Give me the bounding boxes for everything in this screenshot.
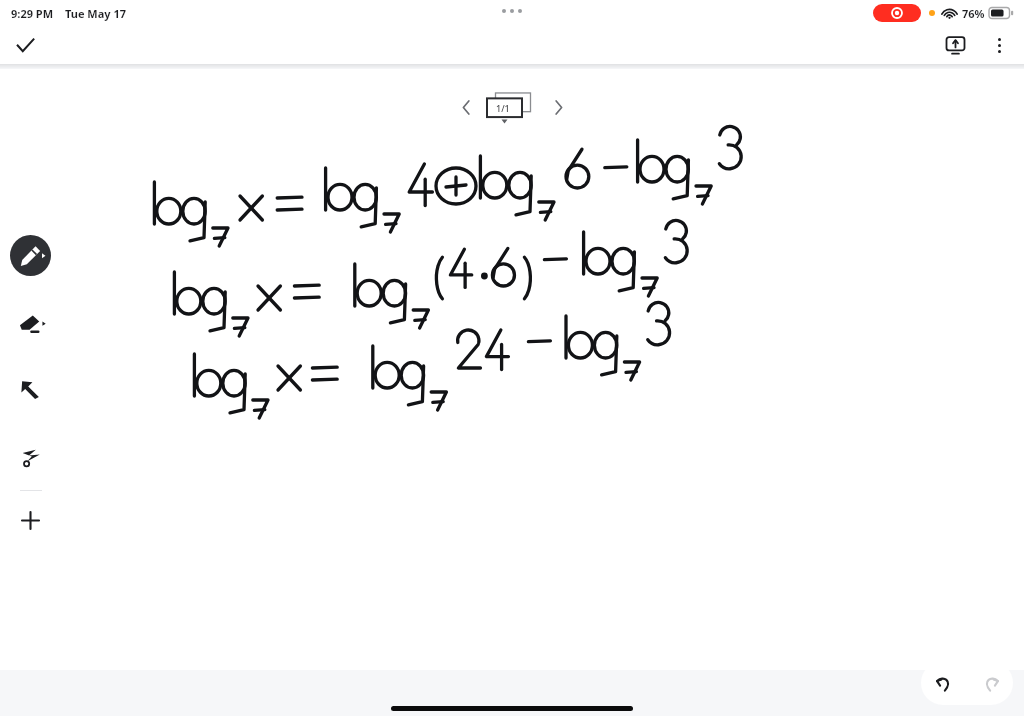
button[interactable]: More options	[982, 28, 1016, 62]
button[interactable]: Redo	[973, 665, 1009, 701]
staticText: 1/1	[496, 102, 510, 114]
button[interactable]: Screen recording	[873, 4, 921, 22]
staticText: 9:29 PM	[11, 6, 54, 21]
button[interactable]: Add tool	[10, 500, 51, 541]
button[interactable]: Lasso tool	[10, 436, 51, 477]
button[interactable]: Done	[8, 28, 42, 62]
button[interactable]: Previous page	[449, 90, 483, 124]
button[interactable]: Select tool	[10, 369, 51, 410]
button[interactable]: Pen tool	[10, 235, 51, 276]
button[interactable]: Pages 1 of 1	[487, 89, 537, 125]
staticText: Tue May 17	[65, 6, 127, 21]
button[interactable]: Eraser tool	[10, 302, 51, 343]
button[interactable]: Undo	[925, 665, 961, 701]
button[interactable]: Next page	[541, 90, 575, 124]
button[interactable]: Present	[938, 28, 972, 62]
staticText: 76%	[962, 6, 985, 21]
